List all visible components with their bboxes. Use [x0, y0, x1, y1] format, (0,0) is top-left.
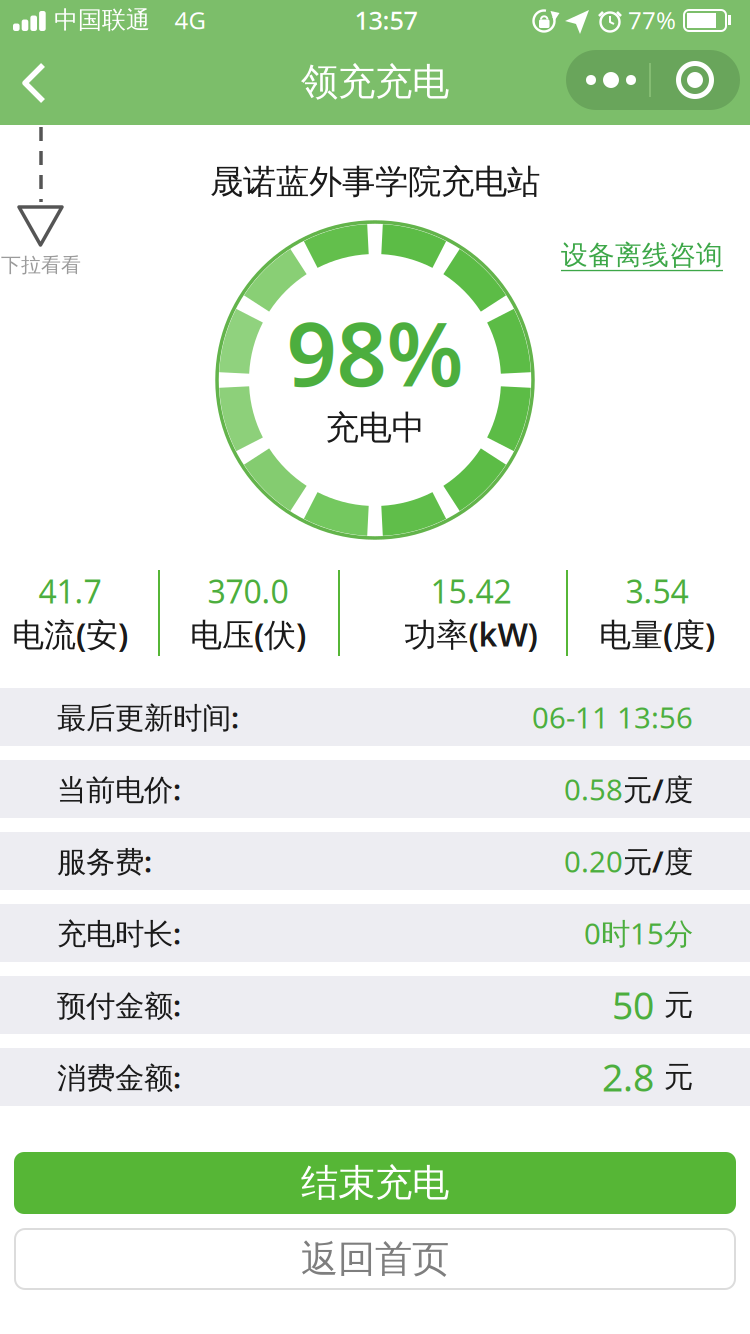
staticText: 06-11 13:56	[532, 697, 693, 736]
button[interactable]: 关闭	[653, 50, 737, 110]
staticText: 元/度	[623, 769, 693, 808]
button[interactable]: 返回	[2, 47, 66, 119]
button[interactable]: 返回首页	[14, 1228, 736, 1290]
staticText: 结束充电	[301, 1160, 449, 1206]
button[interactable]: 设备离线咨询	[561, 239, 723, 271]
staticText: 77%	[628, 4, 676, 36]
staticText: 预付金额:	[57, 985, 181, 1024]
staticText: 当前电价:	[57, 769, 181, 808]
button[interactable]: 更多	[570, 50, 652, 110]
staticText: 电量(度)	[599, 613, 715, 655]
staticText: 4G	[174, 4, 205, 36]
staticText: 370.0	[207, 570, 288, 612]
staticText: 服务费:	[57, 841, 152, 880]
staticText: 最后更新时间:	[57, 697, 239, 736]
staticText: 消费金额:	[57, 1057, 181, 1096]
staticText: 元/度	[623, 841, 693, 880]
staticText: 充电时长:	[57, 913, 181, 952]
staticText: 领充充电	[301, 59, 449, 105]
staticText: 15.42	[430, 570, 511, 612]
staticText: 3.54	[625, 570, 688, 612]
staticText: 元	[664, 987, 693, 1023]
staticText: 充电中	[325, 407, 424, 448]
staticText: 41.7	[38, 570, 101, 612]
staticText: 0时15分	[584, 913, 693, 952]
button[interactable]: 结束充电	[14, 1152, 736, 1214]
staticText: 返回首页	[301, 1236, 449, 1282]
staticText: 13:57	[354, 3, 417, 37]
staticText: 设备离线咨询	[561, 239, 723, 271]
staticText: 电压(伏)	[190, 613, 306, 655]
staticText: 2.8	[602, 1052, 654, 1102]
staticText: 中国联通	[54, 5, 150, 35]
staticText: 电流(安)	[12, 613, 128, 655]
staticText: 50	[612, 980, 654, 1030]
staticText: 晟诺蓝外事学院充电站	[210, 161, 540, 202]
staticText: 0.58	[564, 769, 623, 808]
staticText: 0.20	[564, 841, 623, 880]
staticText: 元	[664, 1059, 693, 1095]
staticText: 功率(kW)	[404, 613, 537, 655]
staticText: 98%	[286, 294, 463, 410]
staticText: 下拉看看	[1, 253, 81, 277]
